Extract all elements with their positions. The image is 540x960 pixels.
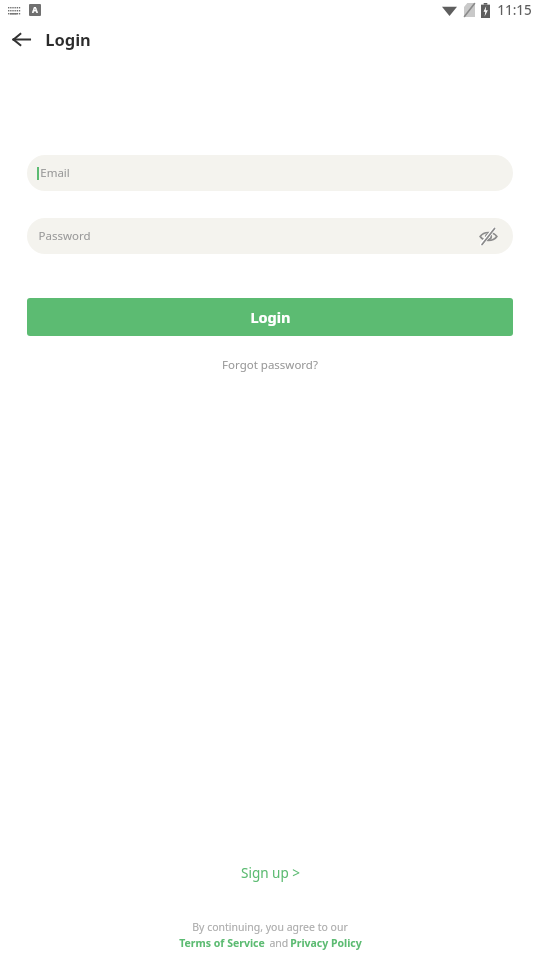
staticText: Password: [38, 228, 91, 244]
staticText: Email: [40, 165, 70, 181]
staticText: and: [265, 936, 290, 950]
button[interactable]: Privacy Policy: [290, 936, 362, 950]
button[interactable]: Back: [6, 24, 36, 54]
button[interactable]: Email: [27, 155, 513, 191]
staticText: Login: [250, 307, 291, 327]
staticText: Login: [45, 28, 91, 50]
staticText: Forgot password?: [222, 357, 318, 373]
button[interactable]: Terms of Service: [179, 936, 265, 950]
button[interactable]: Show password: [475, 223, 501, 249]
button[interactable]: Login: [27, 298, 513, 336]
button[interactable]: Forgot password?: [216, 354, 324, 376]
staticText: By continuing, you agree to our: [192, 920, 348, 934]
staticText: A: [32, 4, 38, 16]
staticText: Privacy Policy: [290, 936, 362, 950]
button[interactable]: Sign up >: [233, 860, 308, 886]
button[interactable]: Password: [27, 218, 513, 254]
staticText: 11:15: [497, 1, 532, 19]
staticText: Terms of Service: [179, 936, 265, 950]
staticText: Sign up >: [241, 864, 300, 882]
